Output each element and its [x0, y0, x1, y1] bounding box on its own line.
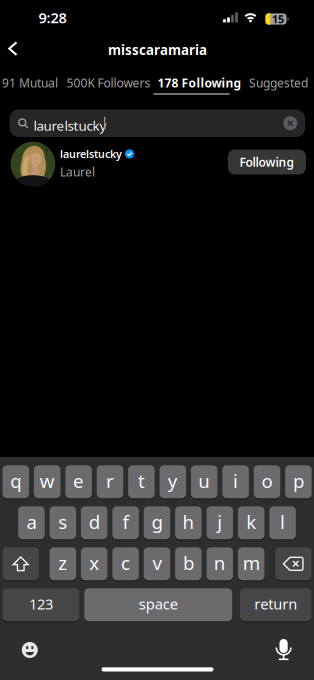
button[interactable]: Following	[228, 149, 306, 174]
staticText: space	[139, 594, 178, 614]
staticText: 123	[29, 594, 53, 614]
button[interactable]: laurelstucky	[0, 138, 314, 194]
staticText: f	[123, 509, 129, 534]
staticText: t	[138, 468, 145, 493]
staticText: 178 Following	[157, 75, 241, 91]
button[interactable]: Dictate	[275, 637, 293, 661]
staticText: p	[293, 468, 304, 493]
button[interactable]: u	[191, 465, 217, 499]
staticText: q	[10, 468, 21, 493]
button[interactable]: m	[238, 547, 264, 581]
staticText: l	[280, 509, 285, 534]
staticText: i	[233, 468, 238, 493]
button[interactable]: Clear search	[283, 116, 297, 130]
button[interactable]: g	[144, 506, 170, 540]
button[interactable]: i	[222, 465, 249, 499]
button[interactable]: e	[65, 465, 92, 499]
staticText: m	[243, 550, 260, 575]
staticText: e	[73, 468, 84, 493]
staticText: w	[40, 468, 55, 493]
staticText: 15	[272, 12, 284, 26]
staticText: g	[151, 509, 162, 534]
button[interactable]: n	[206, 547, 233, 581]
button[interactable]: z	[49, 547, 76, 581]
button[interactable]: a	[18, 506, 45, 540]
staticText: 91 Mutual	[2, 75, 58, 91]
button[interactable]: q	[2, 465, 29, 499]
staticText: r	[106, 468, 114, 493]
button[interactable]: x	[81, 547, 107, 581]
staticText: y	[168, 468, 178, 493]
staticText: s	[58, 509, 67, 534]
button[interactable]: j	[206, 506, 233, 540]
button[interactable]: f	[112, 506, 139, 540]
button[interactable]: v	[144, 547, 170, 581]
button[interactable]: Back	[3, 38, 25, 59]
button[interactable]: o	[254, 465, 280, 499]
button[interactable]: Search	[10, 109, 305, 137]
button[interactable]: y	[159, 465, 186, 499]
staticText: return	[254, 594, 297, 614]
staticText: n	[214, 550, 226, 575]
button[interactable]: Suggested	[249, 75, 308, 91]
staticText: d	[89, 509, 100, 534]
staticText: Suggested	[249, 75, 308, 91]
staticText: Following	[239, 154, 294, 170]
staticText: h	[182, 509, 194, 534]
staticText: j	[217, 509, 222, 534]
button[interactable]: space	[84, 588, 232, 622]
button[interactable]: 91 Mutual	[2, 75, 58, 91]
button[interactable]: Emoji	[22, 642, 38, 658]
staticText: o	[261, 468, 272, 493]
staticText: z	[58, 550, 67, 575]
button[interactable]: 123	[2, 588, 79, 622]
button[interactable]: s	[49, 506, 76, 540]
button[interactable]: p	[285, 465, 312, 499]
staticText: x	[89, 550, 99, 575]
button[interactable]: b	[175, 547, 202, 581]
staticText: u	[198, 468, 210, 493]
staticText: Laurel	[60, 164, 95, 180]
button[interactable]: l	[269, 506, 296, 540]
button[interactable]: Delete	[275, 547, 312, 581]
staticText: v	[152, 550, 161, 575]
staticText: 9:28	[38, 8, 66, 27]
button[interactable]: h	[175, 506, 202, 540]
staticText: laurelstucky	[34, 117, 107, 134]
button[interactable]: w	[34, 465, 60, 499]
button[interactable]: r	[97, 465, 123, 499]
button[interactable]: 178 Following	[157, 75, 241, 91]
staticText: a	[26, 509, 36, 534]
button[interactable]: Shift	[2, 547, 39, 581]
staticText: laurelstucky	[60, 147, 122, 161]
button[interactable]: d	[81, 506, 107, 540]
button[interactable]: k	[238, 506, 264, 540]
staticText: misscaramaria	[108, 41, 207, 59]
button[interactable]: c	[112, 547, 139, 581]
staticText: c	[121, 550, 130, 575]
staticText: k	[246, 509, 256, 534]
button[interactable]: t	[128, 465, 155, 499]
button[interactable]: 500K Followers	[66, 75, 150, 91]
staticText: b	[183, 550, 194, 575]
button[interactable]: return	[240, 588, 311, 622]
staticText: 500K Followers	[66, 75, 150, 91]
